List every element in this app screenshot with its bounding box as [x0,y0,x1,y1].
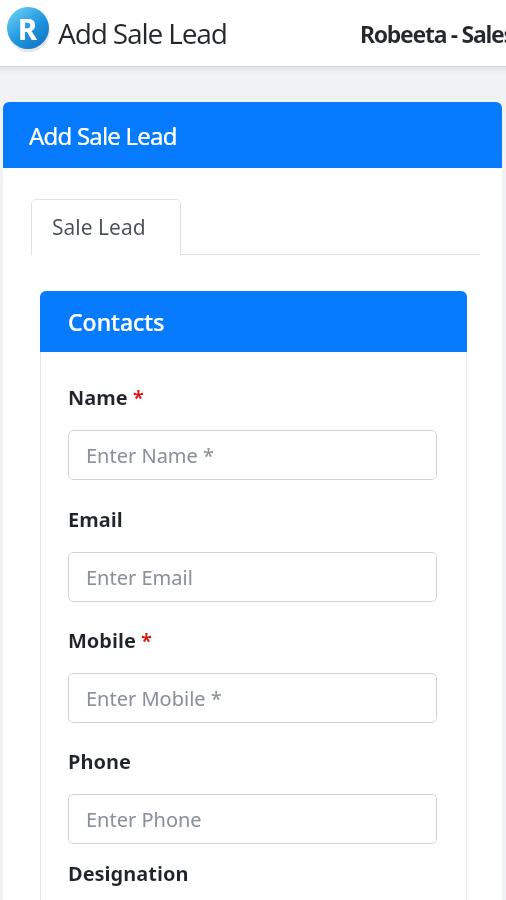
staticText: R [18,9,38,48]
staticText: Robeeta - Sales [360,18,506,49]
staticText: Add Sale Lead [58,14,227,52]
staticText: Phone [68,748,131,775]
button[interactable]: Enter Email [68,552,437,602]
button[interactable]: Enter Mobile * [68,673,437,723]
staticText: Enter Mobile * [86,685,222,712]
button[interactable]: R [7,7,49,49]
staticText: Sale Lead [52,213,146,242]
button[interactable]: Enter Phone [68,794,437,844]
staticText: Email [68,506,123,533]
button[interactable]: Enter Name * [68,430,437,480]
staticText: Name * [68,384,144,411]
staticText: Add Sale Lead [29,119,177,152]
staticText: Contacts [68,306,165,337]
staticText: Designation [68,860,189,887]
staticText: Enter Name * [86,442,215,469]
staticText: Mobile * [68,627,152,654]
staticText: Enter Phone [86,806,202,833]
button[interactable]: Sale Lead [31,199,181,255]
staticText: Enter Email [86,564,193,591]
